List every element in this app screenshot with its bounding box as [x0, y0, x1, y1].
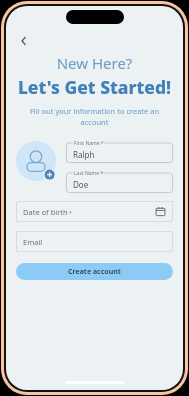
- staticText: Ralph: [73, 149, 95, 160]
- staticText: Last Name *: [74, 170, 104, 177]
- staticText: Email: [23, 237, 43, 247]
- staticText: Date of birth *: [23, 207, 72, 217]
- button[interactable]: First Name *: [66, 139, 173, 163]
- staticText: Doe: [73, 179, 89, 190]
- staticText: New Here?: [6, 53, 183, 73]
- button[interactable]: Email: [16, 231, 173, 252]
- staticText: Create account: [68, 267, 121, 277]
- button[interactable]: Create account: [16, 263, 173, 280]
- other: Pick date: [156, 207, 165, 216]
- button[interactable]: Back: [14, 31, 34, 51]
- staticText: Fill out your information to create an a…: [22, 106, 167, 127]
- button[interactable]: Last Name *: [66, 169, 173, 193]
- staticText: Let's Get Started!: [6, 75, 183, 99]
- button[interactable]: Add photo: [16, 141, 60, 183]
- staticText: First Name *: [74, 140, 104, 147]
- button[interactable]: Date of birth *: [16, 201, 173, 222]
